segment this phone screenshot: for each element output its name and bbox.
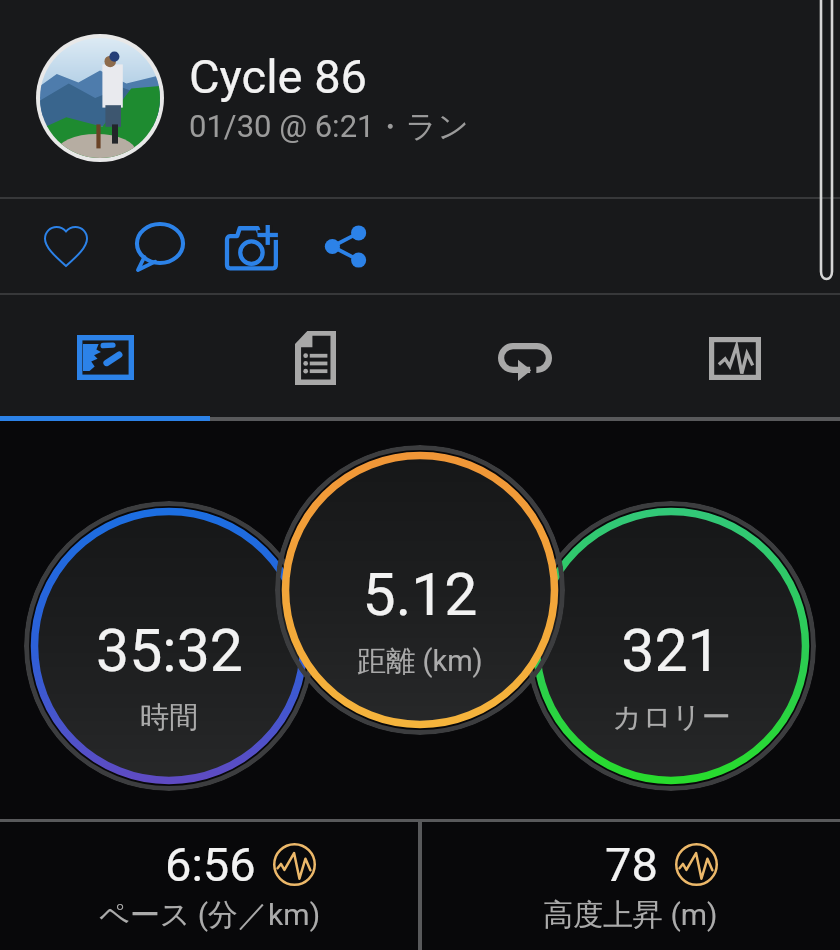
staticText: 5.12	[362, 560, 478, 629]
button[interactable]: Comment	[113, 199, 207, 293]
button[interactable]: 35:32	[24, 501, 314, 791]
button[interactable]: 321	[526, 501, 816, 791]
staticText: 321	[621, 616, 721, 685]
button[interactable]: Like	[19, 199, 113, 293]
staticText: 35:32	[96, 616, 243, 685]
staticText: 01/30 @ 6:21・ラン	[189, 107, 469, 146]
staticText: 時間	[140, 699, 198, 736]
staticText: カロリー	[612, 699, 731, 736]
button[interactable]: Share	[298, 199, 392, 293]
button[interactable]: Add photo	[208, 199, 302, 293]
button[interactable]: Laps	[420, 295, 630, 415]
button[interactable]: 5.12	[275, 445, 565, 735]
button[interactable]: 6:56	[0, 822, 419, 950]
staticText: ペース (分／km)	[99, 896, 321, 934]
button[interactable]: Analysis	[630, 295, 840, 415]
staticText: Cycle 86	[189, 49, 367, 104]
staticText: 6:56	[165, 837, 256, 892]
button[interactable]: Athlete photo	[40, 38, 160, 158]
staticText: 78	[605, 837, 658, 892]
staticText: 高度上昇 (m)	[543, 896, 718, 934]
button[interactable]: Splits	[210, 295, 420, 415]
button[interactable]: 78	[421, 822, 840, 950]
button[interactable]: Map	[0, 295, 210, 415]
staticText: 距離 (km)	[357, 643, 483, 680]
